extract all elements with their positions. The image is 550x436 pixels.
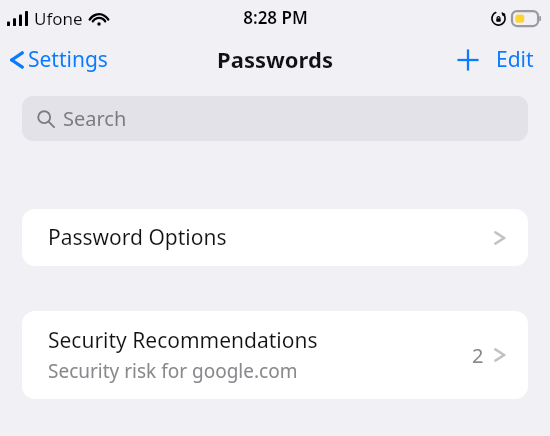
button[interactable]: Settings <box>0 41 118 78</box>
staticText: Search <box>63 105 127 132</box>
staticText: Security risk for google.com <box>48 358 298 384</box>
staticText: Security Recommendations <box>48 326 318 355</box>
staticText: 2 <box>472 342 484 369</box>
staticText: Password Options <box>48 223 227 252</box>
staticText: Passwords <box>217 44 333 74</box>
button[interactable]: Password Options <box>22 209 528 266</box>
staticText: 8:28 PM <box>243 6 308 29</box>
staticText: Ufone <box>34 7 83 30</box>
button[interactable]: Search <box>22 96 528 141</box>
button[interactable]: Add password <box>448 40 488 80</box>
button[interactable]: Edit <box>488 39 550 80</box>
staticText: Edit <box>496 45 534 74</box>
staticText: Settings <box>28 45 108 74</box>
button[interactable]: Security Recommendations <box>22 311 528 399</box>
